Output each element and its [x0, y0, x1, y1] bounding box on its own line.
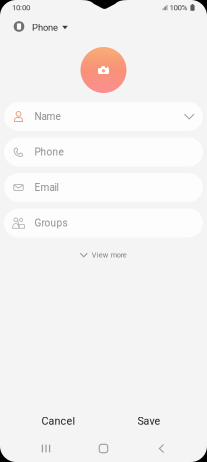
- staticText: Save: [137, 415, 160, 427]
- button[interactable]: Groups: [4, 208, 203, 237]
- staticText: Cancel: [41, 415, 75, 427]
- button[interactable]: Back: [144, 437, 178, 459]
- button[interactable]: Name: [4, 102, 203, 131]
- button[interactable]: Email: [4, 173, 203, 202]
- staticText: Phone: [32, 22, 58, 33]
- staticText: Groups: [34, 217, 67, 229]
- button[interactable]: Save: [109, 408, 189, 434]
- staticText: 100%: [169, 3, 187, 12]
- staticText: Name: [34, 111, 60, 122]
- button[interactable]: Cancel: [18, 408, 98, 434]
- button[interactable]: Recent apps: [29, 437, 63, 459]
- button[interactable]: Add photo: [80, 47, 126, 93]
- button[interactable]: Phone: [4, 137, 203, 166]
- staticText: View more: [92, 251, 127, 259]
- staticText: Phone: [34, 146, 63, 158]
- button[interactable]: Home: [86, 437, 120, 459]
- staticText: 10:00: [12, 3, 30, 12]
- staticText: Email: [34, 182, 58, 193]
- button[interactable]: View more: [72, 246, 135, 264]
- button[interactable]: Phone: [5, 13, 75, 39]
